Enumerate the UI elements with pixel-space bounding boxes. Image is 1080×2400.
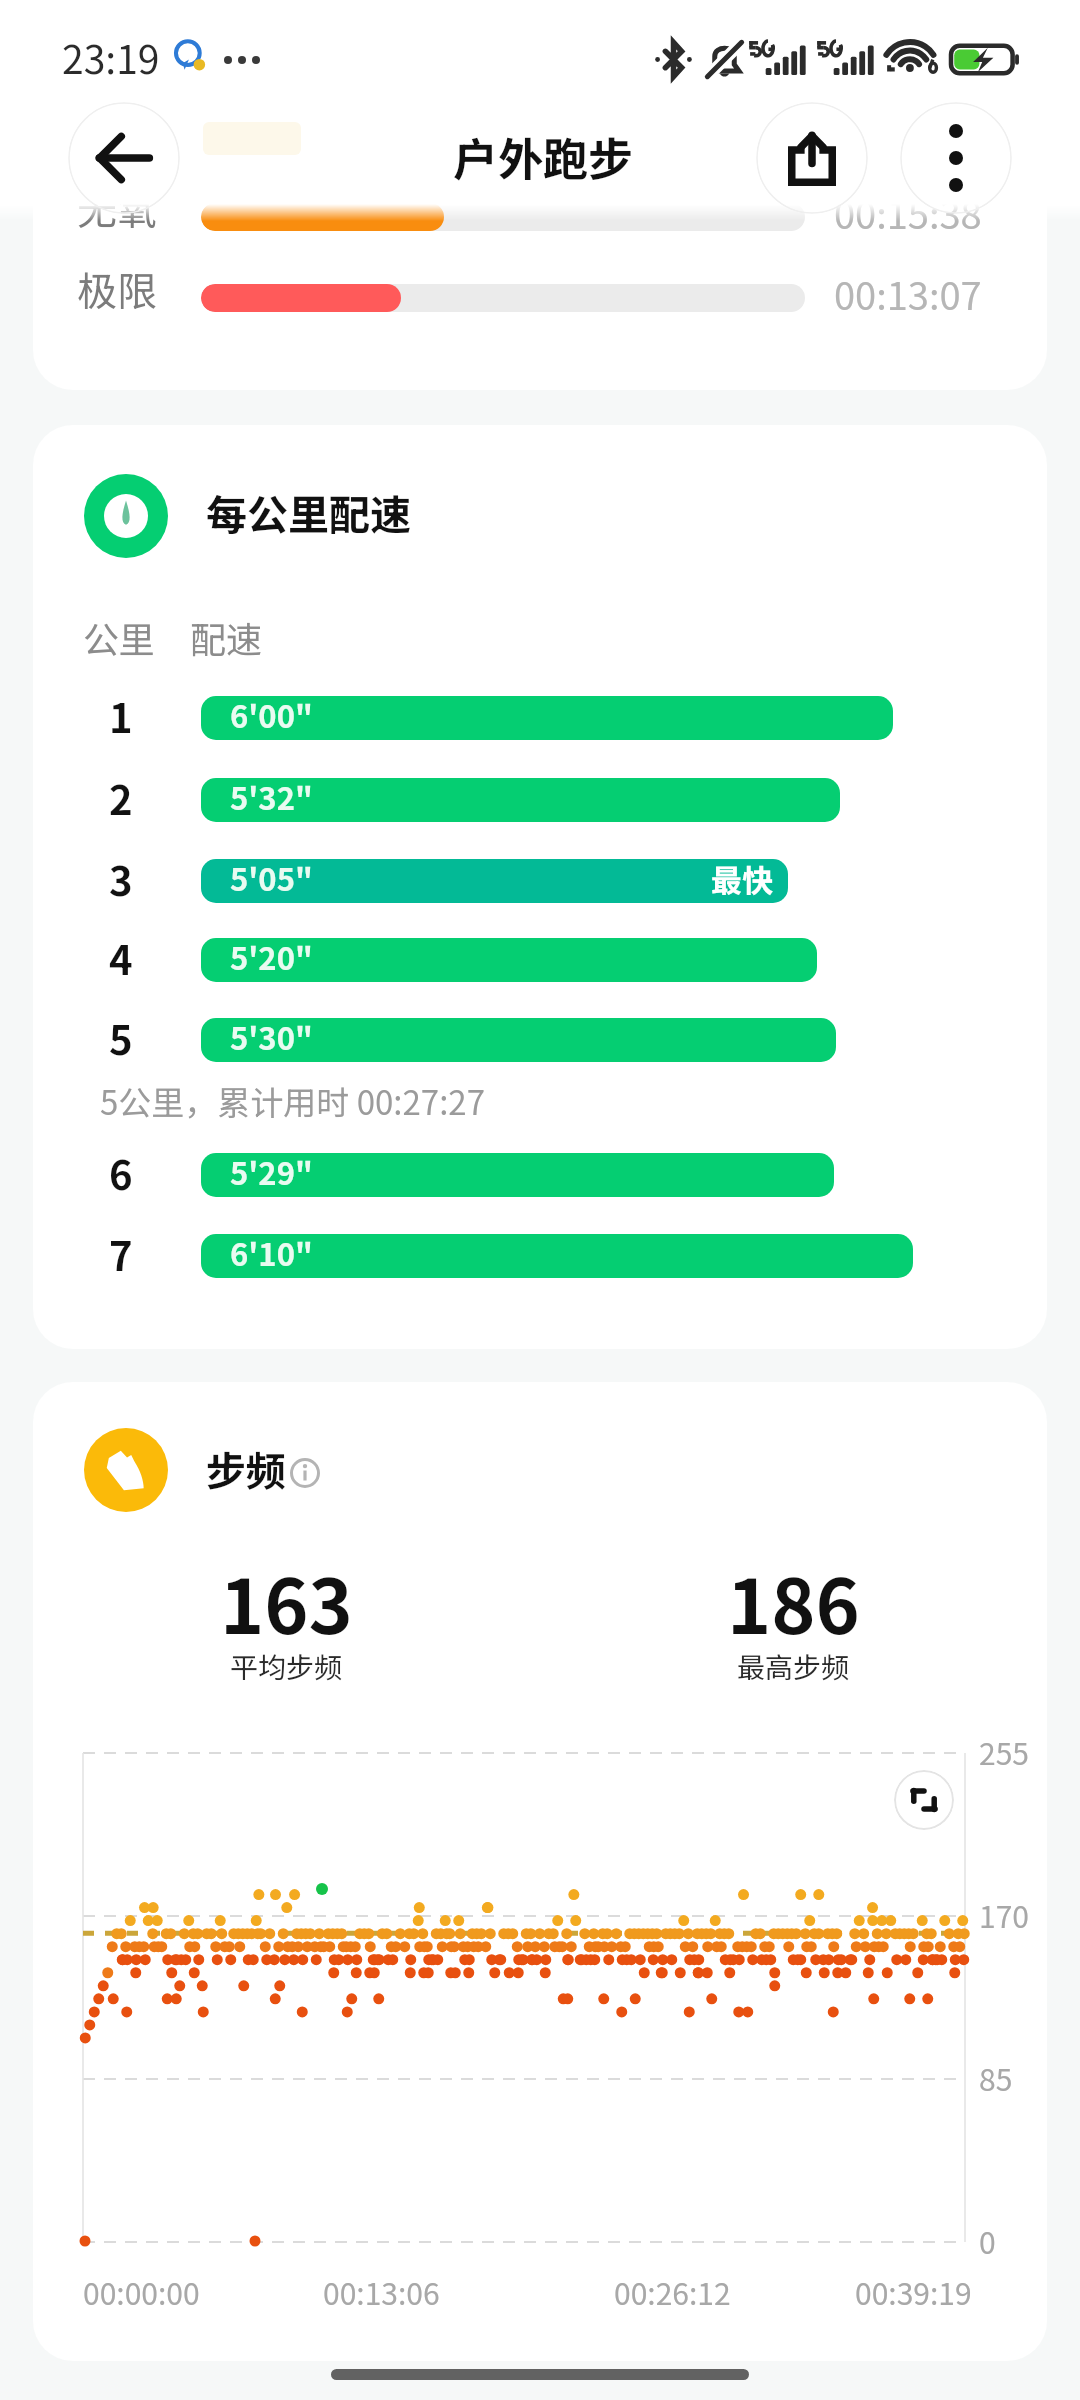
staticText: 6'10" [230, 1230, 313, 1275]
staticText: 85 [979, 2056, 1013, 2099]
button[interactable] [201, 1234, 913, 1278]
staticText: 00:26:12 [614, 2270, 731, 2313]
staticText: 5'29" [230, 1149, 313, 1194]
staticText: 2 [109, 769, 133, 827]
staticText: 步频 [206, 1440, 286, 1498]
staticText: 5公里，累计用时 00:27:27 [100, 1077, 485, 1125]
staticText: 5 [109, 1009, 133, 1067]
button[interactable]: More options [900, 102, 1012, 214]
staticText: 5'32" [230, 774, 313, 819]
staticText: 00:13:06 [323, 2270, 440, 2313]
staticText: 1 [109, 687, 133, 745]
button[interactable]: Share [756, 102, 868, 214]
staticText: 配速 [190, 611, 263, 663]
staticText: 23:19 [62, 29, 160, 85]
staticText: 最快 [711, 856, 773, 901]
staticText: 5'30" [230, 1014, 313, 1059]
staticText: 186 [727, 1547, 860, 1656]
button[interactable] [201, 938, 817, 982]
staticText: 6'00" [230, 692, 313, 737]
staticText: 极限 [77, 260, 157, 318]
button[interactable] [201, 778, 840, 822]
button[interactable]: Back [68, 102, 180, 214]
staticText: 00:39:19 [855, 2270, 972, 2313]
staticText: 5'05" [230, 855, 313, 900]
staticText: 163 [220, 1547, 353, 1656]
button[interactable] [201, 1153, 834, 1197]
button[interactable] [201, 696, 893, 740]
staticText: 00:15:38 [834, 185, 982, 240]
staticText: 5'20" [230, 934, 313, 979]
staticText: 公里 [83, 611, 156, 663]
staticText: 0 [979, 2219, 996, 2262]
staticText: 00:13:07 [834, 266, 982, 321]
staticText: 每公里配速 [206, 482, 411, 541]
staticText: 3 [109, 850, 133, 908]
staticText: 4 [109, 929, 133, 987]
staticText: 无氧 [77, 179, 157, 237]
staticText: 户外跑步 [453, 124, 634, 189]
button[interactable] [201, 1018, 836, 1062]
button[interactable] [201, 859, 788, 903]
staticText: 6 [109, 1144, 133, 1202]
button[interactable]: Expand chart [894, 1770, 954, 1830]
staticText: 255 [979, 1730, 1029, 1773]
staticText: 00:00:00 [83, 2270, 200, 2313]
staticText: 7 [109, 1225, 133, 1283]
staticText: 平均步频 [230, 1646, 343, 1687]
staticText: 170 [979, 1893, 1029, 1936]
staticText: 最高步频 [737, 1646, 850, 1687]
